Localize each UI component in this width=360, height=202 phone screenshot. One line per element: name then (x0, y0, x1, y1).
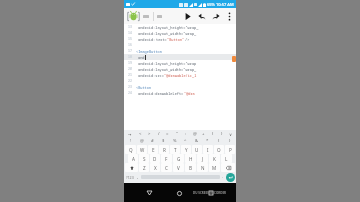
staticText: ! (130, 138, 132, 144)
button[interactable]: P (225, 145, 235, 154)
button[interactable]: = (163, 131, 172, 137)
button[interactable]: : (181, 131, 190, 137)
button[interactable]: ( (208, 131, 217, 137)
staticText: <ImageButton (136, 49, 162, 54)
button[interactable]: . (220, 172, 226, 182)
button[interactable]: < (135, 131, 145, 137)
button[interactable]: L (221, 154, 232, 163)
button[interactable]: 24 (124, 90, 236, 96)
button[interactable]: ?123 (125, 172, 135, 182)
button[interactable]: + (199, 131, 208, 137)
staticText: W (140, 147, 145, 153)
button[interactable]: N (197, 163, 208, 172)
button[interactable]: E (148, 145, 158, 154)
button[interactable]: Back (143, 187, 155, 199)
button[interactable]: U (192, 145, 202, 154)
button[interactable]: Undo (197, 9, 207, 23)
staticText: T (174, 147, 177, 153)
button[interactable]: 17 (124, 48, 236, 54)
button[interactable]: J (197, 154, 208, 163)
staticText: and (138, 55, 145, 60)
staticText: # (151, 138, 154, 144)
button[interactable]: D (150, 154, 160, 163)
button[interactable]: Redo (211, 9, 221, 23)
button[interactable]: & (191, 137, 202, 144)
button[interactable]: ∨ (226, 131, 235, 137)
staticText: U (195, 147, 199, 153)
button[interactable]: ( (213, 137, 224, 144)
button[interactable]: T (170, 145, 180, 154)
button[interactable]: G (173, 154, 184, 163)
button[interactable]: 21 (124, 72, 236, 78)
button[interactable]: Shift (125, 163, 138, 172)
staticText: F (165, 156, 168, 162)
button[interactable]: X (150, 163, 160, 172)
button[interactable]: I (203, 145, 213, 154)
button[interactable]: Enter (226, 173, 235, 182)
button[interactable]: , (135, 172, 141, 182)
staticText: 24 (128, 91, 132, 95)
button[interactable]: 20 (124, 66, 236, 72)
button[interactable]: W (137, 145, 147, 154)
staticText: Y (185, 147, 188, 153)
button[interactable]: Recent apps (204, 186, 218, 200)
staticText: 13 (128, 25, 132, 29)
button[interactable]: More options (224, 9, 234, 23)
staticText: 21 (128, 73, 132, 77)
button[interactable]: B (185, 163, 196, 172)
button[interactable]: S (139, 154, 149, 163)
button[interactable]: 15 (124, 36, 236, 42)
button[interactable]: A (128, 154, 138, 163)
button[interactable]: ) (224, 137, 235, 144)
button[interactable]: Q (125, 145, 136, 154)
button[interactable]: @ (136, 137, 147, 144)
button[interactable]: / (154, 131, 163, 137)
button[interactable]: 23 (124, 84, 236, 90)
button[interactable]: 18 (124, 54, 236, 60)
button[interactable]: Backspace (221, 163, 235, 172)
button[interactable]: → (125, 131, 135, 137)
button[interactable]: * (202, 137, 213, 144)
button[interactable]: R (159, 145, 169, 154)
button[interactable]: F (161, 154, 172, 163)
staticText: text= (156, 37, 167, 42)
staticText: , (137, 174, 139, 180)
button[interactable]: M (209, 163, 220, 172)
button[interactable]: $ (158, 137, 169, 144)
staticText: = (166, 131, 169, 137)
button[interactable]: Y (181, 145, 191, 154)
staticText: 14 (128, 31, 132, 35)
staticText: M (212, 165, 217, 171)
button[interactable]: ^ (180, 137, 191, 144)
button[interactable]: 14 (124, 30, 236, 36)
staticText: android:drawableLeft= (138, 91, 184, 96)
button[interactable]: O (214, 145, 224, 154)
button[interactable]: H (185, 154, 196, 163)
button[interactable]: ) (217, 131, 226, 137)
button[interactable]: 16 (124, 42, 236, 48)
button[interactable]: " (172, 131, 181, 137)
staticText: > (148, 131, 151, 137)
button[interactable]: Z (139, 163, 149, 172)
button[interactable]: @ (190, 131, 199, 137)
staticText: 23 (128, 85, 132, 89)
button[interactable]: 22 (124, 78, 236, 84)
button[interactable]: > (145, 131, 154, 137)
staticText: "@dra (184, 91, 195, 96)
staticText: : (185, 131, 187, 137)
staticText: 65% (207, 2, 215, 7)
staticText: I (207, 147, 209, 153)
button[interactable]: AIDE home (126, 9, 140, 23)
staticText: J (202, 156, 204, 162)
button[interactable]: V (173, 163, 184, 172)
button[interactable]: % (169, 137, 180, 144)
button[interactable]: # (147, 137, 158, 144)
button[interactable]: Run (183, 9, 193, 23)
button[interactable]: ! (125, 137, 136, 144)
button[interactable]: K (209, 154, 220, 163)
button[interactable]: C (161, 163, 172, 172)
button[interactable]: 19 (124, 60, 236, 66)
button[interactable]: 13 (124, 24, 236, 30)
button[interactable]: Home (173, 187, 185, 199)
